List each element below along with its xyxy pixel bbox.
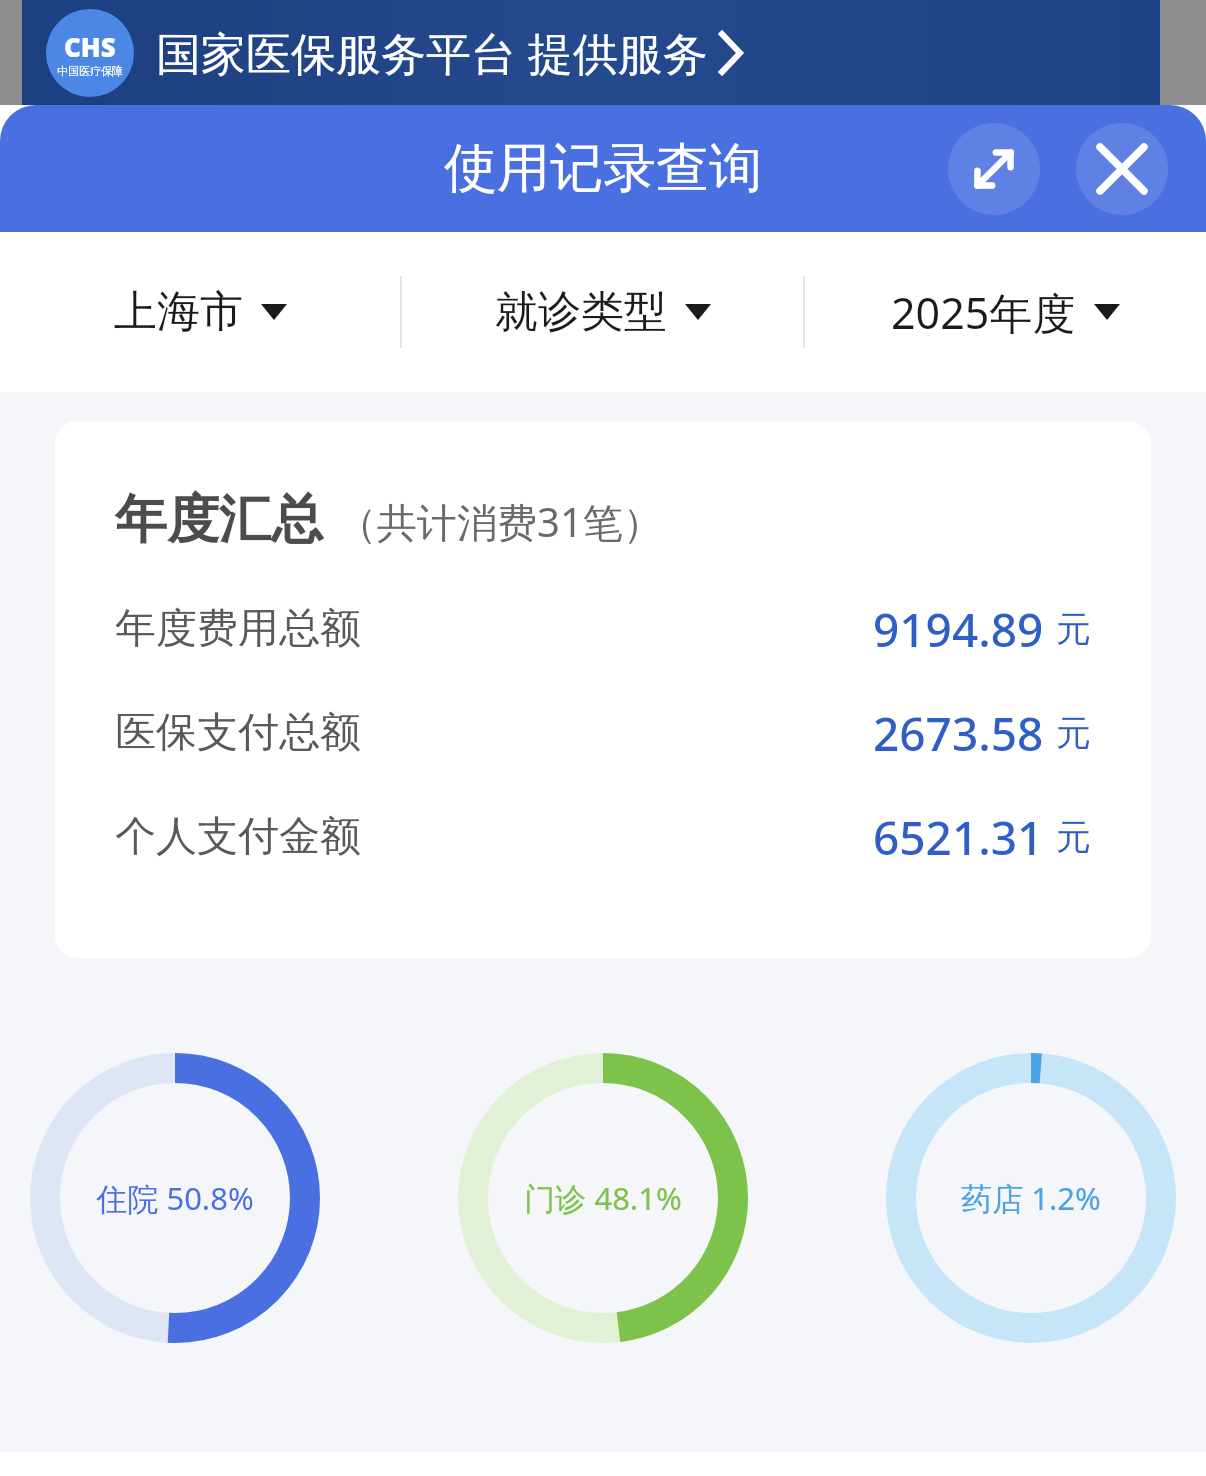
- button[interactable]: CHS: [46, 0, 742, 105]
- staticText: 年度费用总额: [115, 603, 361, 655]
- staticText: 个人支付金额: [115, 811, 361, 863]
- button[interactable]: 门诊 48.1%: [458, 1053, 748, 1343]
- staticText: 2025年度: [891, 283, 1076, 342]
- button[interactable]: 年度费用总额: [115, 577, 1091, 681]
- button[interactable]: Expand: [948, 123, 1040, 215]
- staticText: 中国医疗保障: [57, 64, 123, 78]
- button[interactable]: 上海市: [0, 232, 400, 392]
- staticText: CHS: [64, 29, 116, 64]
- button[interactable]: 2025年度: [805, 232, 1206, 392]
- button[interactable]: 药店 1.2%: [886, 1053, 1176, 1343]
- staticText: 上海市: [114, 285, 243, 339]
- staticText: 6521.31: [873, 806, 1044, 869]
- button[interactable]: 年度汇总: [55, 421, 1151, 958]
- staticText: 住院 50.8%: [96, 1177, 254, 1219]
- button[interactable]: 就诊类型: [402, 232, 803, 392]
- staticText: 药店 1.2%: [961, 1177, 1101, 1219]
- staticText: 门诊 48.1%: [524, 1177, 682, 1219]
- staticText: 元: [1056, 607, 1091, 651]
- staticText: 使用记录查询: [444, 135, 762, 202]
- button[interactable]: 个人支付金额: [115, 785, 1091, 889]
- staticText: （共计消费31笔）: [337, 494, 663, 549]
- staticText: 元: [1056, 815, 1091, 859]
- staticText: 就诊类型: [495, 285, 667, 339]
- button[interactable]: Close: [1076, 123, 1168, 215]
- staticText: 9194.89: [873, 598, 1044, 661]
- staticText: 国家医保服务平台 提供服务: [156, 22, 720, 83]
- staticText: 医保支付总额: [115, 707, 361, 759]
- button[interactable]: 住院 50.8%: [30, 1053, 320, 1343]
- staticText: 2673.58: [873, 702, 1044, 765]
- staticText: 元: [1056, 711, 1091, 755]
- button[interactable]: 医保支付总额: [115, 681, 1091, 785]
- staticText: 年度汇总: [115, 487, 323, 553]
